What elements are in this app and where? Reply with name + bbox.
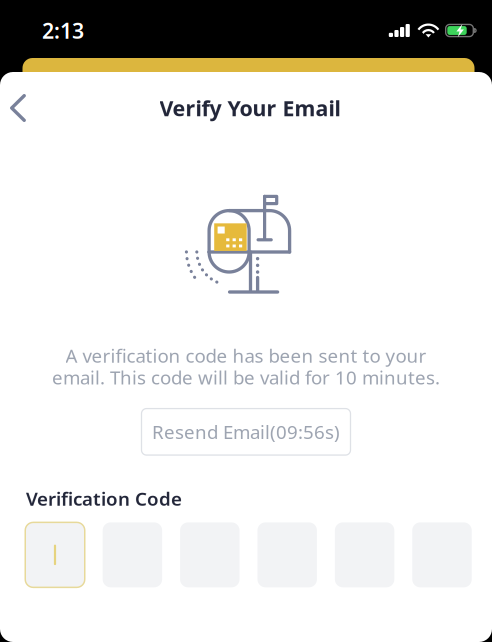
- staticText: Verification Code: [26, 486, 182, 511]
- staticText: Resend Email(09:56s): [152, 419, 340, 444]
- button[interactable]: Resend Email(09:56s): [141, 409, 350, 455]
- staticText: 2:13: [42, 16, 84, 45]
- staticText: email. This code will be valid for 10 mi…: [52, 365, 440, 390]
- button[interactable]: Back: [0, 80, 43, 136]
- staticText: Verify Your Email: [159, 94, 340, 122]
- button[interactable]: Digit 1: [25, 522, 85, 587]
- staticText: A verification code has been sent to you…: [65, 343, 426, 368]
